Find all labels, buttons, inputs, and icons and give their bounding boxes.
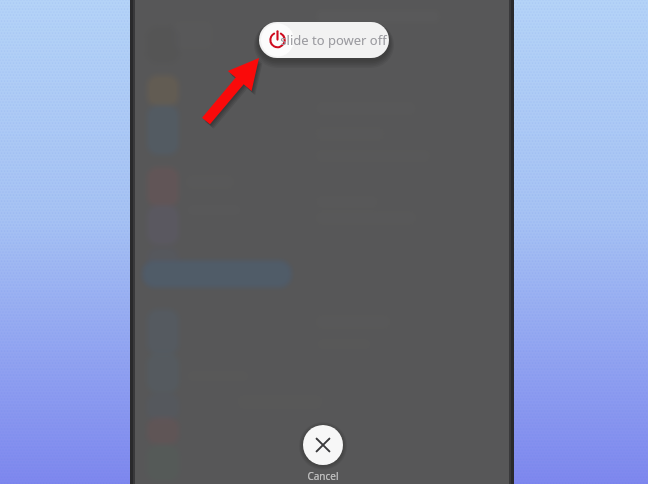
button[interactable]: slide to power off — [259, 22, 389, 58]
staticText: slide to power off — [280, 31, 387, 49]
button[interactable] — [303, 425, 343, 465]
staticText: Cancel — [307, 469, 339, 483]
